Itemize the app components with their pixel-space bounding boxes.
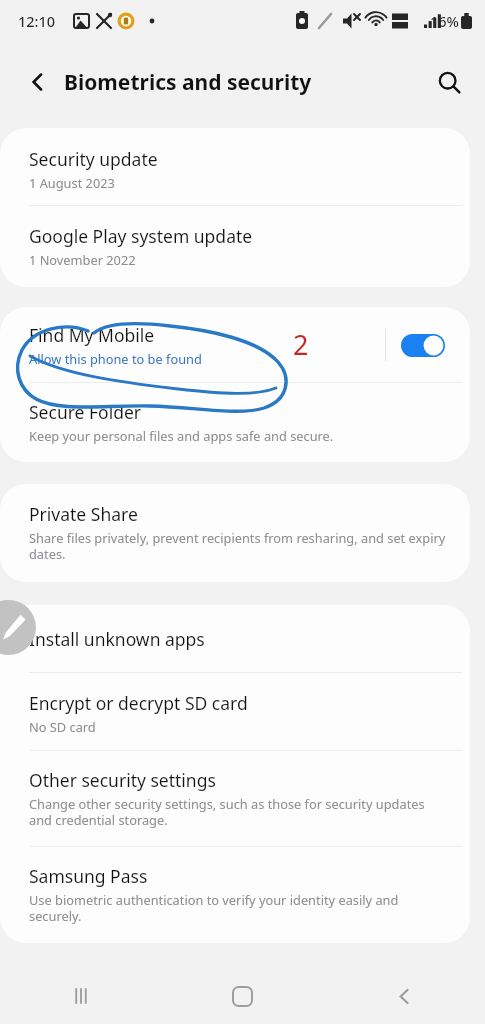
button[interactable]: Google Play system update [0, 206, 470, 287]
button[interactable]: Back [16, 60, 60, 104]
staticText: Allow this phone to be found [29, 350, 202, 367]
staticText: 16% [430, 11, 459, 31]
staticText: Samsung Pass [29, 864, 148, 888]
staticText: Find My Mobile [29, 323, 155, 347]
button[interactable]: Private Share [0, 484, 470, 582]
button[interactable]: Recents [0, 968, 161, 1024]
staticText: Google Play system update [29, 224, 253, 248]
staticText: 2 [293, 326, 309, 363]
button[interactable]: Samsung Pass [0, 847, 470, 943]
staticText: Security update [29, 147, 158, 171]
button[interactable]: Find My Mobile switch [386, 325, 460, 366]
staticText: 12:10 [18, 11, 56, 31]
staticText: Keep your personal files and apps safe a… [29, 427, 334, 444]
staticText: Share files privately, prevent recipient… [29, 529, 450, 563]
button[interactable]: Edit [0, 600, 36, 655]
button[interactable]: Find My Mobile [0, 307, 470, 382]
button[interactable]: Encrypt or decrypt SD card [0, 673, 470, 750]
button[interactable]: Secure Folder [0, 383, 470, 462]
staticText: 1 August 2023 [29, 174, 115, 191]
button[interactable]: Install unknown apps [0, 605, 470, 672]
staticText: Secure Folder [29, 400, 142, 424]
button[interactable]: Security update [0, 128, 470, 205]
staticText: Use biometric authentication to verify y… [29, 891, 450, 925]
button[interactable]: Home [161, 968, 323, 1024]
button[interactable]: Search [427, 60, 471, 104]
staticText: No SD card [29, 718, 96, 735]
button[interactable]: Other security settings [0, 751, 470, 846]
staticText: Install unknown apps [29, 627, 205, 651]
staticText: Encrypt or decrypt SD card [29, 691, 248, 715]
staticText: Biometrics and security [64, 68, 312, 97]
staticText: Other security settings [29, 768, 216, 792]
staticText: Change other security settings, such as … [29, 795, 450, 829]
staticText: 1 November 2022 [29, 251, 136, 268]
button[interactable]: Back [323, 968, 485, 1024]
staticText: Private Share [29, 502, 138, 526]
